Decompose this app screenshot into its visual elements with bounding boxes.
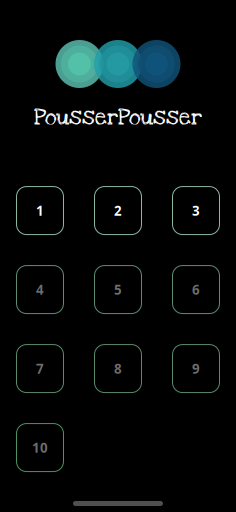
- button[interactable]: 9: [172, 344, 220, 393]
- button[interactable]: 6: [172, 265, 220, 314]
- staticText: 10: [32, 439, 48, 456]
- button[interactable]: 3: [172, 186, 220, 235]
- staticText: 6: [192, 281, 200, 298]
- button[interactable]: 1: [16, 186, 64, 235]
- staticText: PousserPousser: [34, 103, 202, 132]
- button[interactable]: 7: [16, 344, 64, 393]
- staticText: 8: [114, 360, 122, 377]
- staticText: 3: [192, 202, 200, 219]
- staticText: 4: [36, 281, 44, 298]
- staticText: 7: [36, 360, 44, 377]
- staticText: 9: [192, 360, 200, 377]
- button[interactable]: 2: [94, 186, 142, 235]
- staticText: 2: [114, 202, 122, 219]
- button[interactable]: 8: [94, 344, 142, 393]
- staticText: 5: [114, 281, 122, 298]
- button[interactable]: 4: [16, 265, 64, 314]
- button[interactable]: 5: [94, 265, 142, 314]
- button[interactable]: 10: [16, 423, 64, 472]
- staticText: 1: [36, 202, 44, 219]
